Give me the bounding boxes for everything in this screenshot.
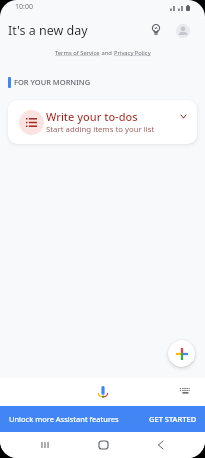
staticText: 10:00 bbox=[15, 2, 33, 12]
button[interactable]: Insights bbox=[146, 20, 166, 40]
button[interactable]: Back bbox=[151, 436, 169, 454]
staticText: and bbox=[100, 49, 114, 57]
button[interactable]: Privacy Policy bbox=[114, 49, 151, 57]
button[interactable]: GET STARTED bbox=[149, 414, 197, 424]
button[interactable]: Recents bbox=[36, 436, 54, 454]
button[interactable]: Unlock more Assistant features bbox=[0, 406, 205, 432]
button[interactable]: Home bbox=[94, 436, 112, 454]
button[interactable]: Write your to-dos bbox=[8, 100, 197, 144]
staticText: Start adding items to your list bbox=[46, 124, 155, 135]
button[interactable]: Keyboard bbox=[177, 383, 193, 399]
button[interactable]: Terms of Service bbox=[55, 49, 100, 57]
staticText: It's a new day bbox=[8, 22, 88, 39]
button[interactable]: Add bbox=[168, 340, 195, 367]
button[interactable]: Talk to Assistant bbox=[93, 382, 113, 402]
button[interactable]: Account bbox=[176, 24, 190, 38]
staticText: Unlock more Assistant features bbox=[9, 414, 119, 424]
button[interactable]: Expand bbox=[176, 109, 190, 123]
staticText: FOR YOUR MORNING bbox=[14, 77, 91, 87]
staticText: Write your to-dos bbox=[46, 109, 138, 124]
